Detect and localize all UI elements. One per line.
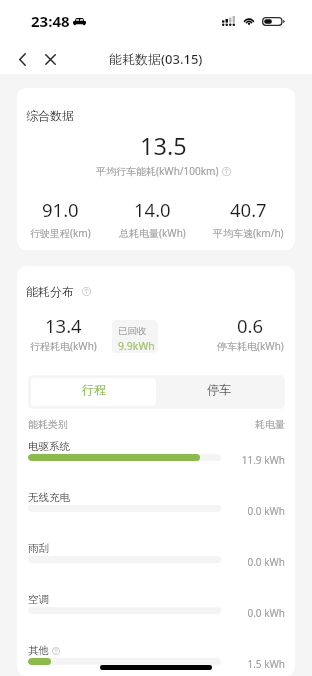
button[interactable]: 无线充电 (28, 492, 285, 543)
button[interactable]: 电驱系统 (28, 441, 285, 492)
staticText: 无线充电 (28, 491, 70, 504)
staticText: 其他 (28, 644, 49, 657)
staticText: 能耗分布 (26, 284, 74, 299)
staticText: 23:48 (31, 11, 70, 31)
staticText: 总耗电量(kWh) (119, 226, 186, 240)
staticText: 平均车速(km/h) (213, 226, 284, 240)
staticText: 40.7 (230, 197, 267, 222)
staticText: 0.0 kWh (247, 504, 285, 518)
staticText: 能耗类别 (28, 418, 68, 431)
staticText: 13.4 (45, 313, 82, 338)
staticText: 0.6 (237, 313, 264, 338)
staticText: 空调 (28, 593, 49, 606)
button[interactable]: Close (36, 44, 64, 74)
staticText: 停车耗电(kWh) (217, 339, 284, 353)
staticText: 9.9kWh (118, 339, 155, 353)
button[interactable]: Back (8, 44, 36, 74)
button[interactable]: 其他 (28, 645, 285, 676)
staticText: 1.5 kWh (247, 657, 285, 671)
staticText: 综合数据 (26, 108, 74, 123)
staticText: 电驱系统 (28, 440, 70, 453)
staticText: 雨刮 (28, 542, 49, 555)
staticText: 停车 (207, 382, 231, 397)
staticText: 行程耗电(kWh) (30, 339, 97, 353)
button[interactable]: 空调 (28, 594, 285, 645)
button[interactable]: 雨刮 (28, 543, 285, 594)
staticText: 平均行车能耗(kWh/100km) (96, 164, 219, 178)
button[interactable]: 行程 (31, 378, 156, 406)
staticText: 0.0 kWh (247, 555, 285, 569)
staticText: 能耗数据(03.15) (109, 50, 203, 68)
staticText: 已回收 (118, 325, 147, 337)
staticText: 行驶里程(km) (30, 226, 91, 240)
button[interactable]: 停车 (156, 378, 282, 406)
staticText: 0.0 kWh (247, 606, 285, 620)
staticText: 11.9 kWh (241, 453, 285, 467)
staticText: 耗电量 (255, 418, 285, 431)
staticText: 行程 (82, 382, 106, 397)
staticText: 14.0 (134, 197, 171, 222)
staticText: 91.0 (42, 197, 79, 222)
staticText: 13.5 (140, 130, 187, 162)
